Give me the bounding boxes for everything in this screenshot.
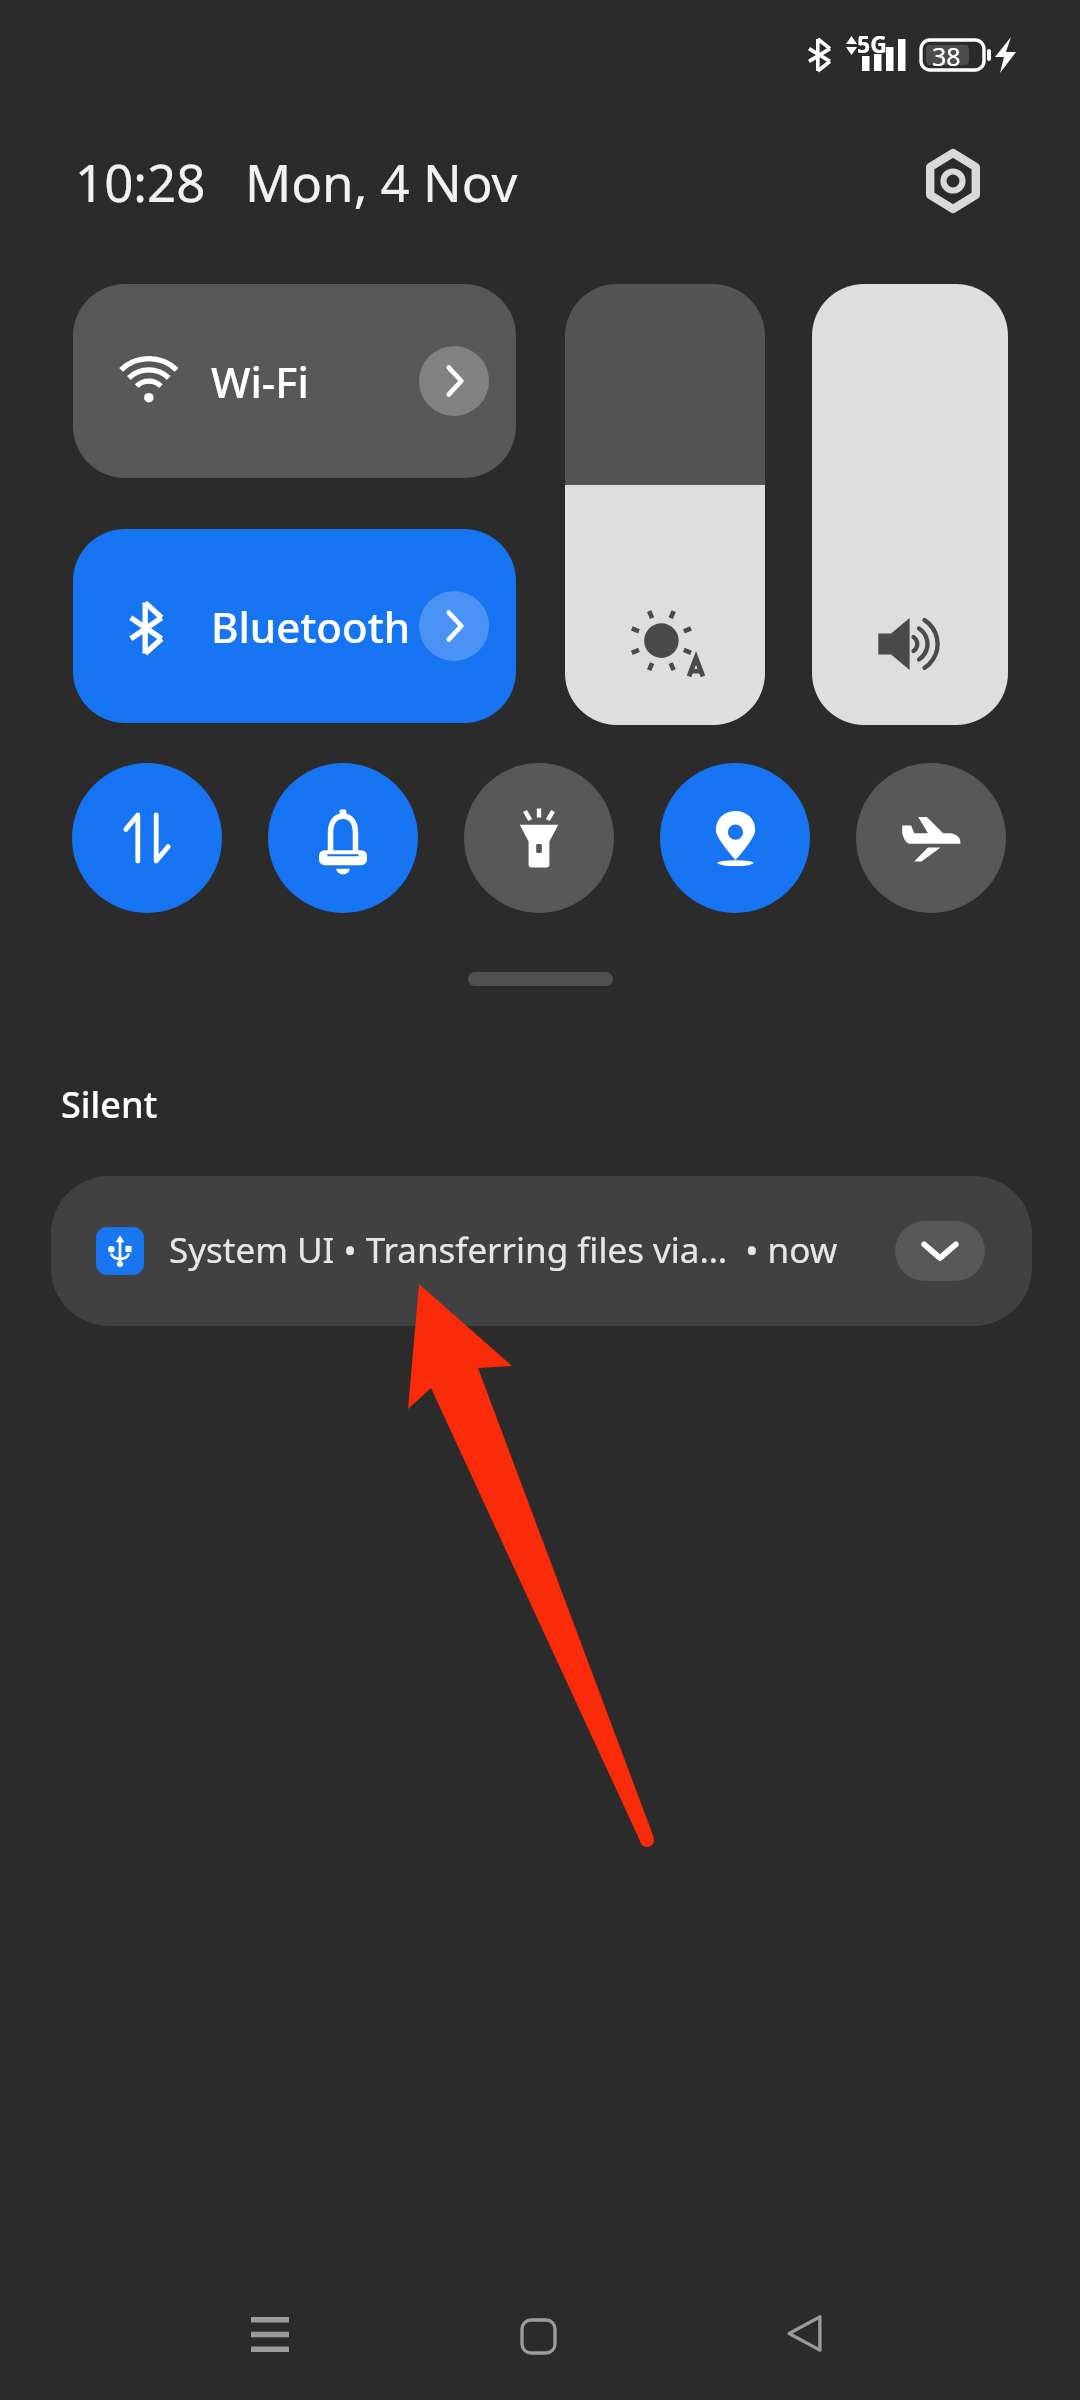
button[interactable]: Expand notification bbox=[895, 1221, 985, 1281]
button[interactable]: Flashlight bbox=[464, 763, 614, 913]
button[interactable]: System UI • Transferring files via… • no… bbox=[51, 1176, 1032, 1326]
staticText: 5G bbox=[857, 28, 887, 59]
button[interactable]: Brightness bbox=[565, 284, 765, 725]
button[interactable]: Airplane mode bbox=[856, 763, 1006, 913]
staticText: 38 bbox=[932, 39, 961, 73]
staticText: Silent bbox=[61, 1080, 158, 1129]
staticText: System UI • Transferring files via… • no… bbox=[169, 1226, 838, 1274]
button[interactable]: Volume bbox=[812, 284, 1008, 725]
staticText: 10:28 bbox=[75, 147, 206, 216]
staticText: Bluetooth bbox=[211, 598, 411, 655]
button[interactable]: Home bbox=[468, 2261, 608, 2400]
button[interactable]: Wi-Fi bbox=[73, 284, 516, 478]
button[interactable]: Back bbox=[734, 2258, 874, 2400]
button[interactable]: Ring bbox=[268, 763, 418, 913]
button[interactable]: Location bbox=[660, 763, 810, 913]
button[interactable]: Recents bbox=[200, 2259, 340, 2400]
staticText: Mon, 4 Nov bbox=[245, 147, 518, 216]
button[interactable]: Settings bbox=[908, 136, 998, 226]
button[interactable]: Mobile data bbox=[72, 763, 222, 913]
button[interactable]: Expand quick settings bbox=[468, 972, 613, 986]
staticText: Wi-Fi bbox=[211, 353, 309, 410]
button[interactable]: Bluetooth bbox=[73, 529, 516, 723]
